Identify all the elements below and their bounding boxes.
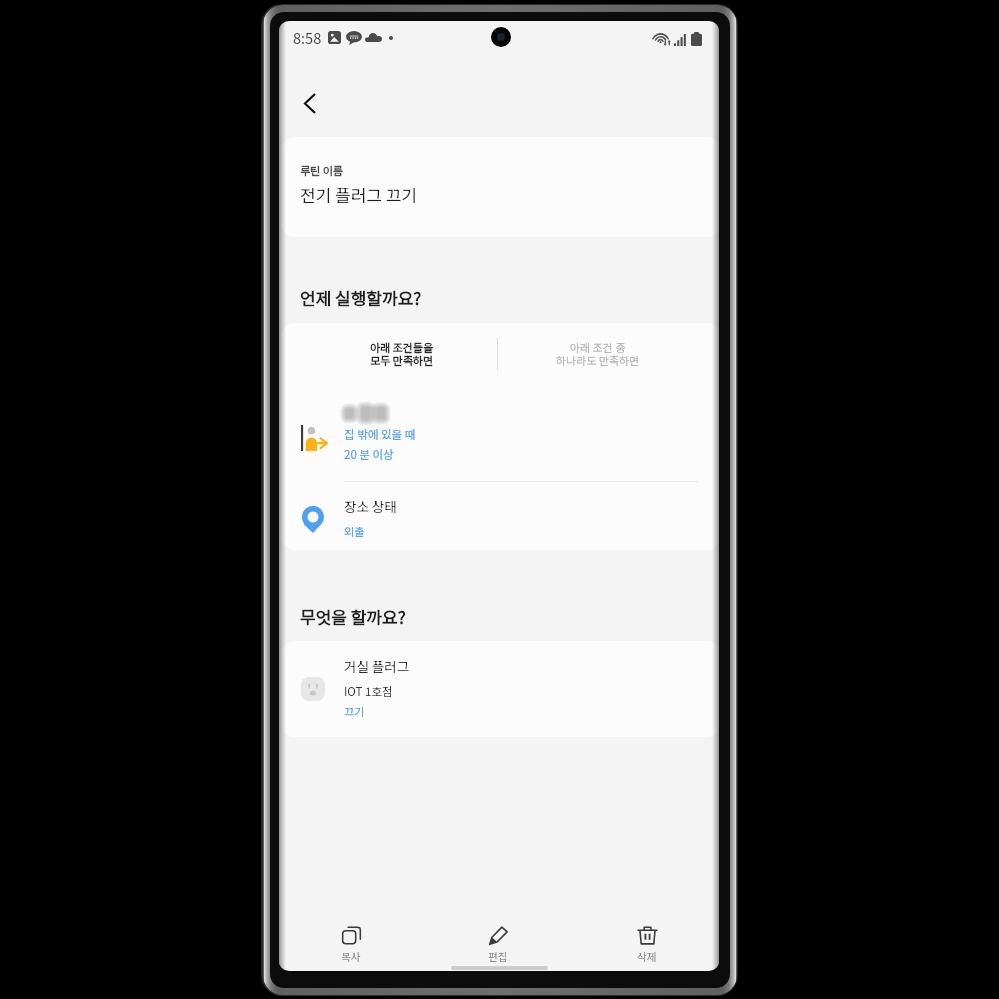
button[interactable]: 거실 플러그 (281, 641, 719, 737)
staticText: 복사 (341, 949, 361, 964)
button[interactable]: 아래 조건들을 모두 만족하면 (281, 323, 500, 385)
staticText: 아래 조건 중 하나라도 만족하면 (488, 339, 707, 368)
staticText: 집 밖에 있을 때 (344, 426, 416, 443)
button[interactable]: 루틴 이름 (281, 137, 719, 237)
button[interactable]: 복사 (297, 903, 405, 971)
button[interactable] (281, 393, 719, 481)
staticText: 편집 (488, 949, 508, 964)
staticText: 외출 (344, 523, 365, 539)
staticText: 삭제 (637, 949, 657, 964)
button[interactable]: 편집 (444, 903, 552, 971)
staticText: 아래 조건들을 모두 만족하면 (292, 339, 511, 368)
button[interactable]: 아래 조건 중 하나라도 만족하면 (500, 323, 719, 385)
staticText: 거실 플러그 (344, 656, 410, 676)
staticText: 루틴 이름 (300, 162, 343, 178)
staticText: 8:58 (293, 27, 322, 48)
staticText: 끄기 (344, 703, 365, 719)
staticText: 언제 실행할까요? (300, 285, 422, 310)
staticText: 전기 플러그 끄기 (300, 182, 418, 207)
button[interactable]: Back (286, 79, 334, 127)
staticText: 장소 상태 (344, 496, 397, 516)
staticText: 20 분 이상 (344, 446, 394, 463)
staticText: IOT 1호점 (344, 683, 393, 700)
button[interactable] (281, 482, 719, 550)
button[interactable]: 삭제 (593, 903, 701, 971)
staticText: 무엇을 할까요? (300, 604, 406, 629)
